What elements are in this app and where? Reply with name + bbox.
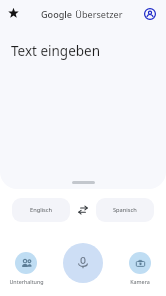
button[interactable]: Camera	[129, 252, 151, 274]
staticText: Text eingeben	[11, 42, 101, 60]
button[interactable]: Spanisch	[96, 198, 154, 222]
button[interactable]: Speak	[63, 243, 103, 283]
button[interactable]: Englisch	[12, 198, 70, 222]
staticText: Übersetzer	[73, 8, 123, 20]
button[interactable]: Swap languages	[70, 198, 96, 222]
staticText: Englisch	[30, 206, 53, 214]
button[interactable]: Conversation	[15, 252, 37, 274]
button[interactable]: Account	[140, 4, 159, 23]
staticText: Kamera	[130, 278, 150, 285]
staticText: Spanisch	[113, 206, 137, 214]
staticText: Unterhaltung	[9, 278, 44, 285]
staticText: Google	[41, 8, 73, 20]
button[interactable]: Saved translations	[4, 4, 23, 23]
